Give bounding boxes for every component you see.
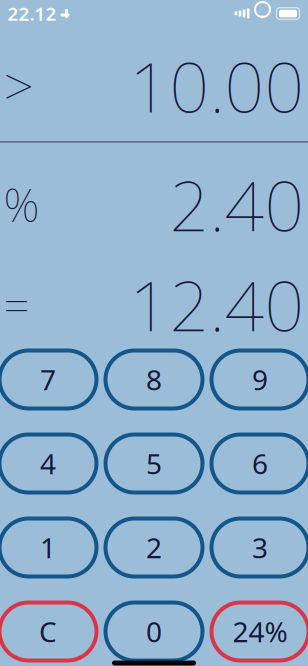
staticText: 12.40: [129, 258, 304, 350]
staticText: 4: [40, 445, 56, 482]
button[interactable]: 4: [0, 434, 96, 492]
button[interactable]: 6: [211, 434, 308, 492]
button[interactable]: 24%: [211, 602, 308, 660]
staticText: C: [39, 613, 57, 650]
staticText: %: [3, 174, 39, 234]
staticText: =: [3, 274, 29, 335]
staticText: 22.12: [7, 1, 56, 26]
button[interactable]: 2: [105, 518, 202, 576]
button[interactable]: 5: [105, 434, 202, 492]
staticText: 9: [252, 361, 268, 398]
staticText: 2: [146, 529, 162, 566]
staticText: 0: [146, 613, 162, 650]
staticText: 24%: [232, 613, 287, 650]
staticText: 7: [40, 361, 56, 398]
button[interactable]: 1: [0, 518, 96, 576]
staticText: 5: [146, 445, 162, 482]
staticText: 6: [252, 445, 268, 482]
button[interactable]: 9: [211, 350, 308, 408]
button[interactable]: 3: [211, 518, 308, 576]
staticText: 10.00: [129, 39, 304, 132]
staticText: 3: [252, 529, 268, 566]
button[interactable]: 0: [105, 602, 202, 660]
button[interactable]: 7: [0, 350, 96, 408]
button[interactable]: 8: [105, 350, 202, 408]
staticText: >: [3, 50, 33, 121]
staticText: 1: [40, 529, 56, 566]
staticText: 8: [146, 361, 162, 398]
staticText: 2.40: [169, 158, 304, 250]
button[interactable]: C: [0, 602, 96, 660]
